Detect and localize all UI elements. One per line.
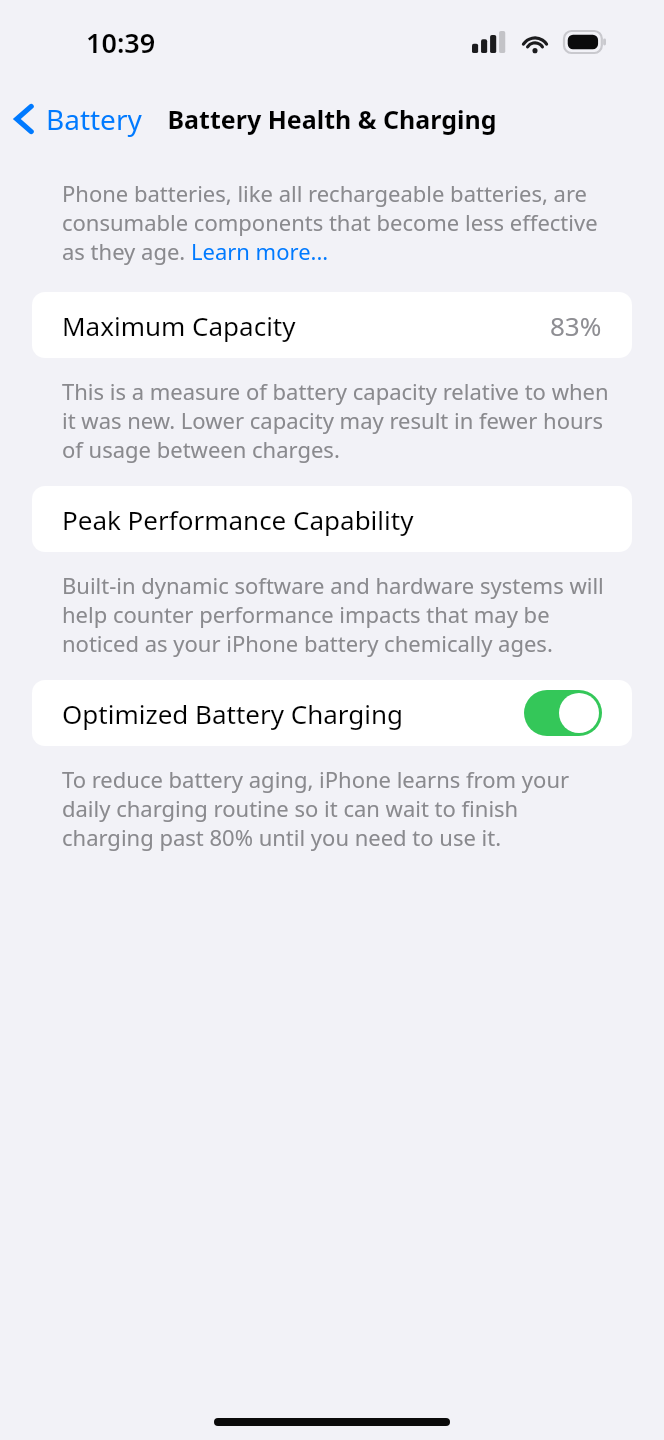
staticText: Battery Health & Charging [167, 102, 497, 136]
button[interactable]: Phone batteries, like all rechargeable b… [62, 178, 614, 266]
staticText: Maximum Capacity [62, 308, 296, 343]
staticText: Battery [46, 100, 142, 138]
button[interactable]: Peak Performance Capability [32, 486, 632, 552]
staticText: Optimized Battery Charging [62, 696, 404, 731]
button[interactable]: Maximum Capacity [32, 292, 632, 358]
button[interactable]: Optimized Battery Charging toggle, on [524, 690, 602, 736]
staticText: Built-in dynamic software and hardware s… [62, 570, 614, 658]
staticText: To reduce battery aging, iPhone learns f… [62, 764, 614, 852]
staticText: This is a measure of battery capacity re… [62, 376, 614, 464]
button[interactable]: Optimized Battery Charging [32, 680, 632, 746]
staticText: Peak Performance Capability [62, 502, 414, 537]
button[interactable]: Battery [0, 94, 152, 144]
staticText: 10:39 [86, 24, 156, 61]
staticText: 83% [550, 308, 602, 343]
